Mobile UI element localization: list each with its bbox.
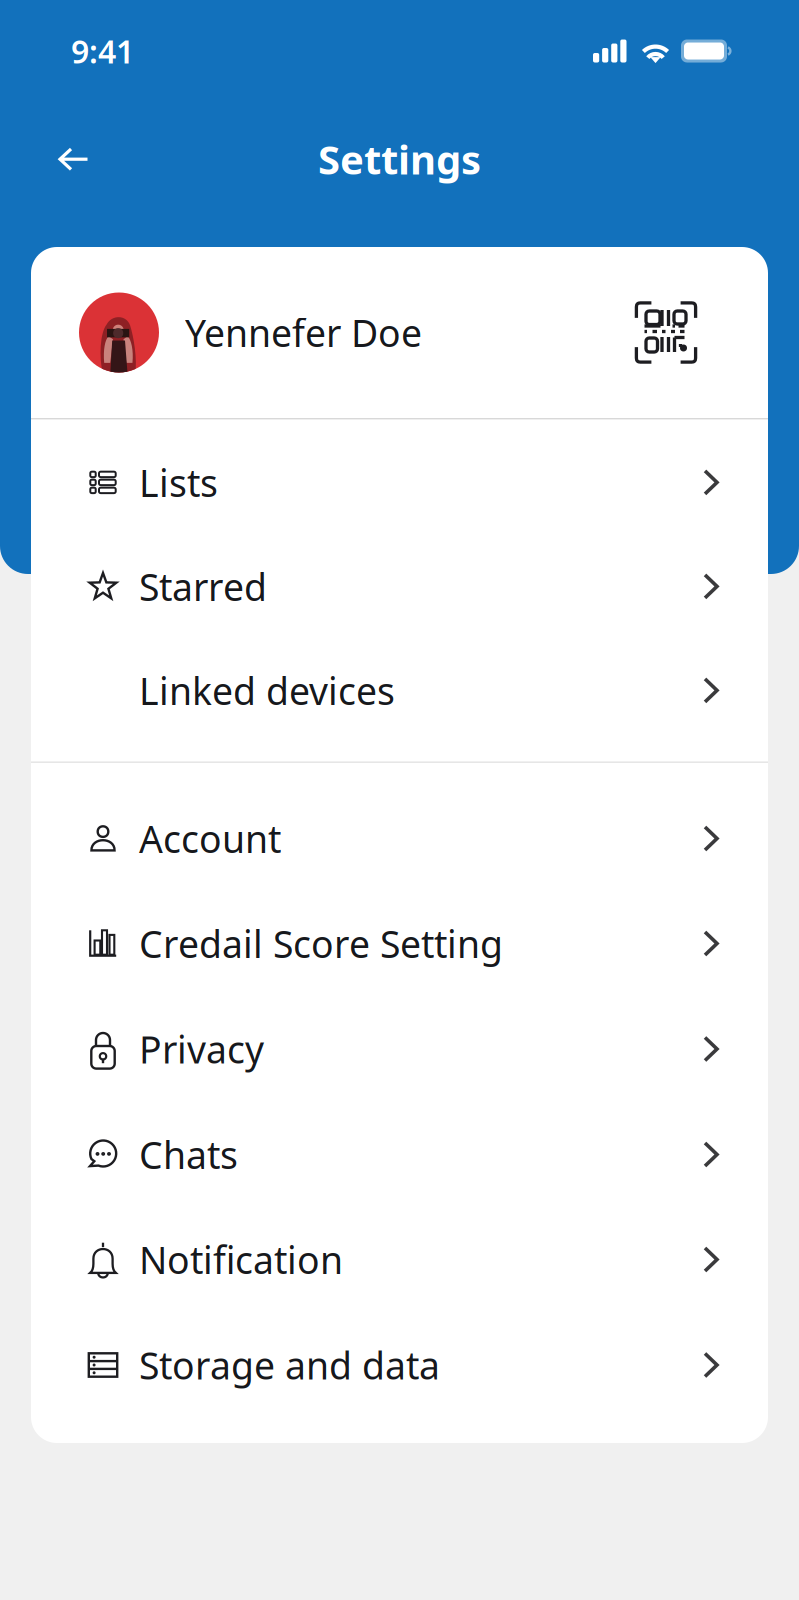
staticText: Linked devices bbox=[139, 666, 395, 715]
staticText: Storage and data bbox=[139, 1340, 440, 1390]
button[interactable]: Storage and data bbox=[31, 1312, 768, 1418]
button[interactable]: Starred bbox=[31, 534, 768, 638]
button[interactable]: Credail Score Setting bbox=[31, 891, 768, 996]
staticText: Privacy bbox=[139, 1024, 264, 1074]
button[interactable]: Linked devices bbox=[31, 638, 768, 742]
staticText: Credail Score Setting bbox=[139, 919, 503, 968]
button[interactable]: Account bbox=[31, 786, 768, 891]
staticText: Lists bbox=[139, 458, 218, 507]
staticText: Starred bbox=[139, 562, 267, 611]
button[interactable]: Privacy bbox=[31, 996, 768, 1102]
staticText: Chats bbox=[139, 1130, 238, 1179]
button[interactable]: Yennefer Doe bbox=[31, 247, 768, 418]
staticText: Settings bbox=[318, 132, 481, 185]
staticText: Notification bbox=[139, 1235, 343, 1284]
button[interactable]: Back bbox=[43, 132, 104, 186]
button[interactable]: Lists bbox=[31, 430, 768, 534]
staticText: Yennefer Doe bbox=[185, 308, 422, 357]
button[interactable]: Notification bbox=[31, 1207, 768, 1312]
staticText: 9:41 bbox=[71, 30, 134, 72]
button[interactable]: Chats bbox=[31, 1102, 768, 1207]
staticText: Account bbox=[139, 814, 281, 863]
